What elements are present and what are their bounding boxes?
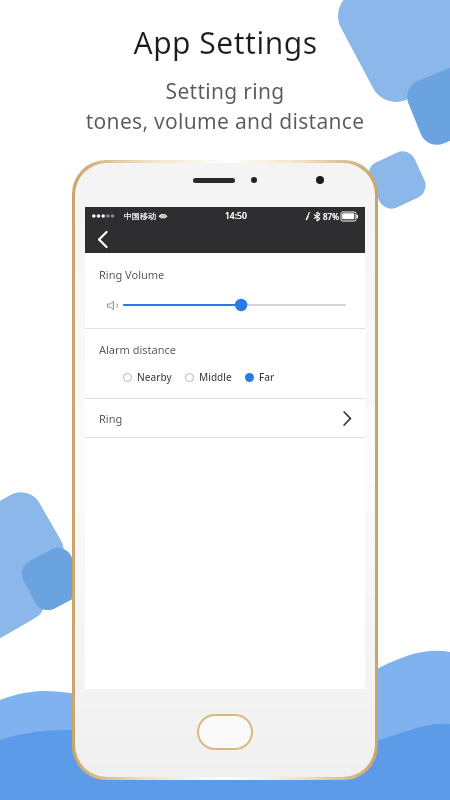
button[interactable]: Back	[85, 225, 119, 253]
button[interactable]: Nearby	[123, 370, 172, 384]
staticText: Middle	[199, 370, 232, 384]
staticText: App Settings	[133, 22, 318, 63]
button[interactable]: Far	[245, 370, 275, 384]
staticText: 中国移动	[124, 211, 156, 221]
button[interactable]: Middle	[185, 370, 232, 384]
button[interactable]	[107, 298, 345, 312]
button[interactable]: Home	[199, 716, 251, 748]
staticText: Nearby	[137, 370, 172, 384]
staticText: 14:50	[225, 210, 247, 222]
staticText: 87%	[323, 211, 339, 222]
staticText: Alarm distance	[99, 342, 177, 357]
staticText: Ring Volume	[99, 267, 165, 282]
button[interactable]: Ring	[85, 399, 365, 437]
staticText: Setting ring tones, volume and distance	[0, 77, 450, 135]
staticText: Ring	[99, 411, 123, 426]
staticText: Far	[259, 370, 275, 384]
